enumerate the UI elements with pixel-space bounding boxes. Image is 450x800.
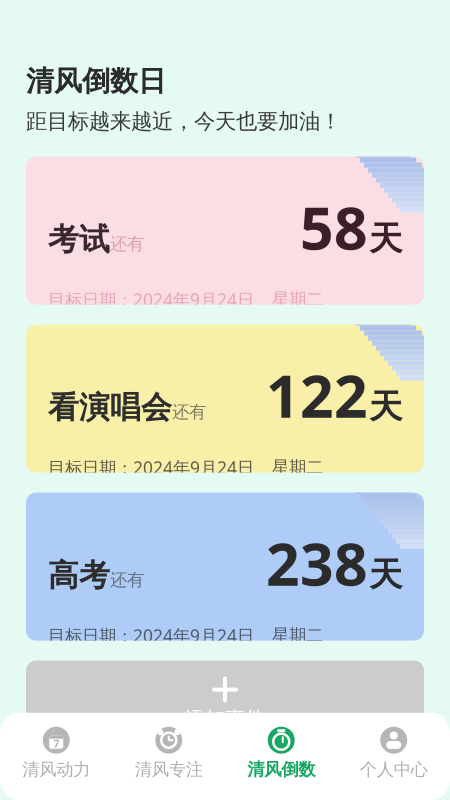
staticText: 星期二 xyxy=(272,289,323,310)
button[interactable]: 添加事件 xyxy=(26,661,424,781)
staticText: 星期二 xyxy=(272,457,323,478)
staticText: 122 xyxy=(266,356,368,434)
staticText: 目标日期：2024年9月24日 xyxy=(48,624,254,647)
staticText: 高考 xyxy=(48,557,110,594)
staticText: 看演唱会 xyxy=(48,389,172,426)
button[interactable]: 7 xyxy=(0,721,112,786)
staticText: 清风专注 xyxy=(135,759,203,780)
button[interactable]: 考试 xyxy=(26,157,424,305)
staticText: 还有 xyxy=(110,569,144,591)
button[interactable]: 看演唱会 xyxy=(26,325,424,473)
staticText: 目标日期：2024年9月24日 xyxy=(48,288,254,311)
staticText: 距目标越来越近，今天也要加油！ xyxy=(26,108,341,135)
staticText: 清风倒数日 xyxy=(26,64,166,98)
button[interactable]: 清风专注 xyxy=(112,721,225,786)
staticText: 目标日期：2024年9月24日 xyxy=(48,456,254,479)
staticText: 天 xyxy=(369,386,402,427)
staticText: 添加事件 xyxy=(185,707,265,731)
staticText: 考试 xyxy=(48,221,110,258)
button[interactable]: 高考 xyxy=(26,493,424,641)
staticText: 238 xyxy=(266,524,368,602)
staticText: 还有 xyxy=(110,233,144,255)
button[interactable]: 清风倒数 xyxy=(225,721,337,786)
staticText: 天 xyxy=(369,218,402,259)
staticText: 星期二 xyxy=(272,625,323,646)
staticText: 还有 xyxy=(172,401,206,423)
staticText: 清风动力 xyxy=(22,759,90,780)
button[interactable]: 个人中心 xyxy=(337,721,450,786)
staticText: 58 xyxy=(300,188,368,266)
staticText: 清风倒数 xyxy=(247,759,315,780)
staticText: 7 xyxy=(53,737,59,751)
staticText: 天 xyxy=(369,554,402,595)
staticText: 个人中心 xyxy=(360,759,428,780)
